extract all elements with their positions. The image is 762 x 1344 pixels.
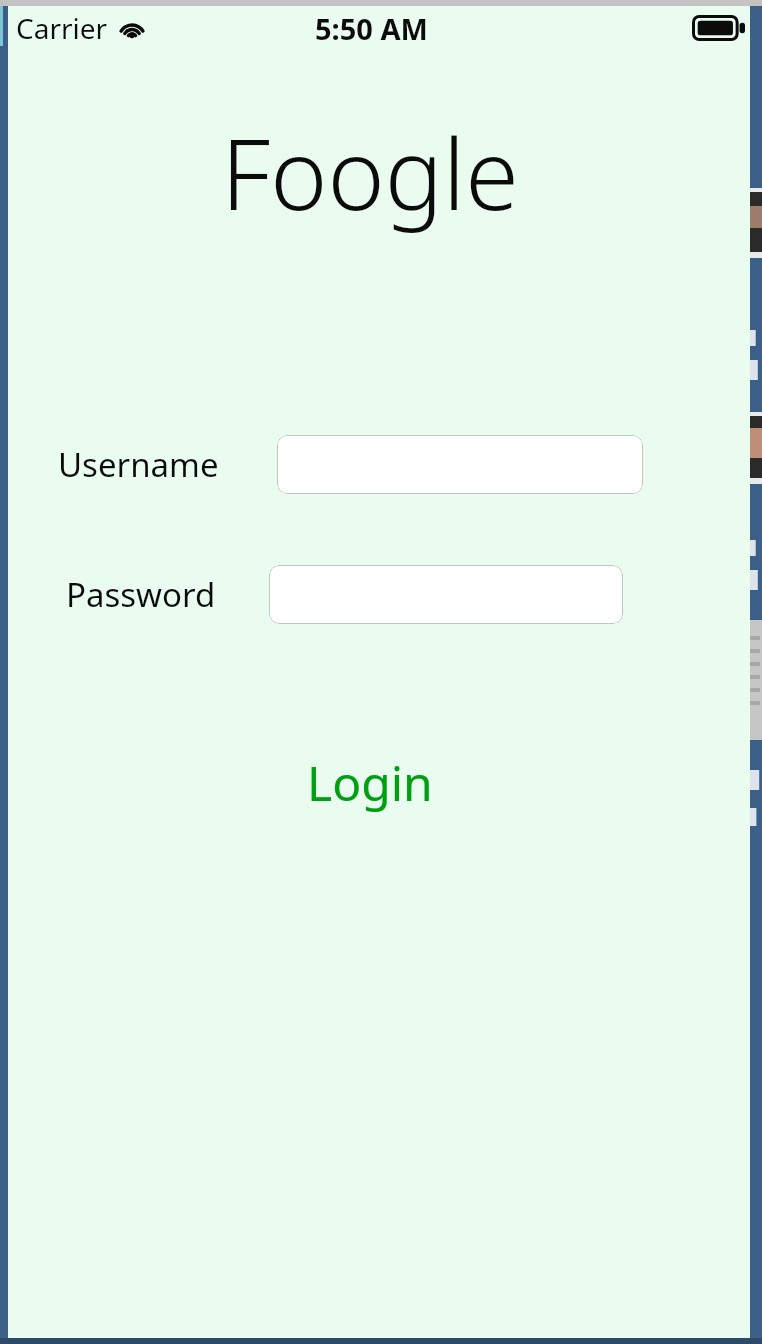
staticText: 5:50 AM [315,9,428,48]
staticText: Foogle [0,106,741,238]
staticText: Login [307,750,433,815]
staticText: Carrier [16,9,108,47]
button[interactable] [277,435,643,494]
button[interactable] [269,565,623,624]
staticText: Username [58,442,219,487]
button[interactable]: Login [289,740,451,825]
staticText: Password [66,572,216,617]
